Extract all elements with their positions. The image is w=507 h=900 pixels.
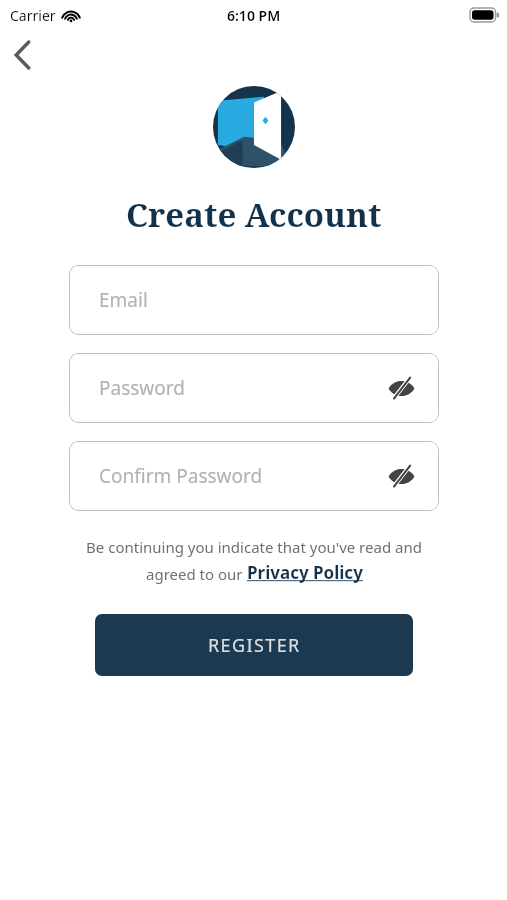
button[interactable]: Toggle password visibility bbox=[383, 370, 419, 406]
button[interactable]: Toggle password visibility bbox=[383, 458, 419, 494]
button[interactable]: Password bbox=[69, 353, 439, 423]
staticText: Email bbox=[99, 287, 148, 313]
staticText: Carrier bbox=[10, 6, 56, 25]
staticText: REGISTER bbox=[208, 633, 301, 658]
button[interactable]: Email bbox=[69, 265, 439, 335]
button[interactable]: Privacy Policy bbox=[247, 561, 363, 584]
button[interactable]: REGISTER bbox=[95, 614, 413, 676]
staticText: agreed to our bbox=[146, 564, 247, 584]
staticText: Create Account bbox=[126, 192, 382, 237]
staticText: Privacy Policy bbox=[247, 561, 363, 584]
staticText: Be continuing you indicate that you've r… bbox=[86, 537, 422, 557]
button[interactable]: Confirm Password bbox=[69, 441, 439, 511]
button[interactable]: Back bbox=[2, 34, 44, 76]
staticText: Confirm Password bbox=[99, 463, 263, 489]
staticText: Password bbox=[99, 375, 185, 401]
staticText: 6:10 PM bbox=[227, 6, 281, 25]
